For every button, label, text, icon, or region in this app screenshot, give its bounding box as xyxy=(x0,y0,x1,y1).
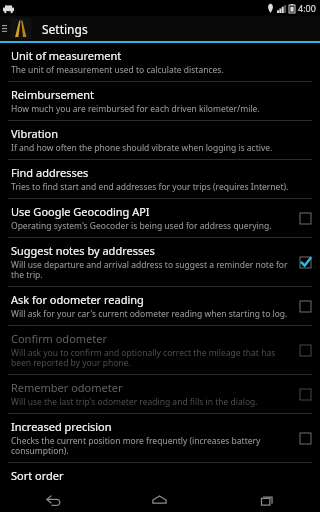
staticText: Reimbursement xyxy=(11,87,95,102)
button[interactable]: Home xyxy=(106,488,213,512)
staticText: Operating system's Geocoder is being use… xyxy=(11,220,272,232)
button[interactable]: Find addresses xyxy=(0,160,320,198)
staticText: Will ask you to confirm and optionally c… xyxy=(11,347,290,369)
button[interactable]: Vibration xyxy=(0,121,320,159)
button[interactable]: Remember odometer xyxy=(0,375,320,413)
staticText: Vibration xyxy=(11,126,58,141)
button[interactable]: Unchecked xyxy=(298,211,312,225)
button[interactable]: Checked xyxy=(298,255,312,269)
staticText: Checks the current position more frequen… xyxy=(11,435,290,457)
button[interactable]: Suggest notes by addresses xyxy=(0,238,320,286)
button[interactable]: Ask for odometer reading xyxy=(0,287,320,325)
staticText: Unit of measurement xyxy=(11,48,122,63)
staticText: If and how often the phone should vibrat… xyxy=(11,142,273,154)
staticText: Remember odometer xyxy=(11,380,123,395)
button[interactable]: Increased precision xyxy=(0,414,320,462)
staticText: Increased precision xyxy=(11,419,112,434)
button[interactable]: Unit of measurement xyxy=(0,43,320,81)
staticText: Confirm odometer xyxy=(11,331,107,346)
button[interactable]: Back xyxy=(0,488,106,512)
staticText: Find addresses xyxy=(11,165,89,180)
button[interactable]: Reimbursement xyxy=(0,82,320,120)
staticText: Ask for odometer reading xyxy=(11,292,144,307)
staticText: The unit of measurement used to calculat… xyxy=(11,64,224,76)
button[interactable]: Sort order xyxy=(0,463,320,488)
staticText: Sort order xyxy=(11,468,64,483)
button[interactable]: Use Google Geocoding API xyxy=(0,199,320,237)
staticText: Use Google Geocoding API xyxy=(11,204,150,219)
staticText: Tries to find start and end addresses fo… xyxy=(11,181,289,193)
button[interactable]: Confirm odometer xyxy=(0,326,320,374)
staticText: Settings xyxy=(42,21,88,37)
button[interactable]: Unchecked xyxy=(298,343,312,357)
button[interactable]: Recent apps xyxy=(213,488,320,512)
button[interactable]: Navigate up xyxy=(0,18,35,39)
button[interactable]: Unchecked xyxy=(298,431,312,445)
button[interactable]: Unchecked xyxy=(298,387,312,401)
staticText: Suggest notes by addresses xyxy=(11,243,155,258)
staticText: Will ask for your car's current odometer… xyxy=(11,308,288,320)
button[interactable]: Unchecked xyxy=(298,299,312,313)
staticText: Will use departure and arrival address t… xyxy=(11,259,290,281)
staticText: How much you are reimbursed for each dri… xyxy=(11,103,260,115)
staticText: Will use the last trip's odometer readin… xyxy=(11,396,258,408)
staticText: 4:00 xyxy=(298,2,316,14)
